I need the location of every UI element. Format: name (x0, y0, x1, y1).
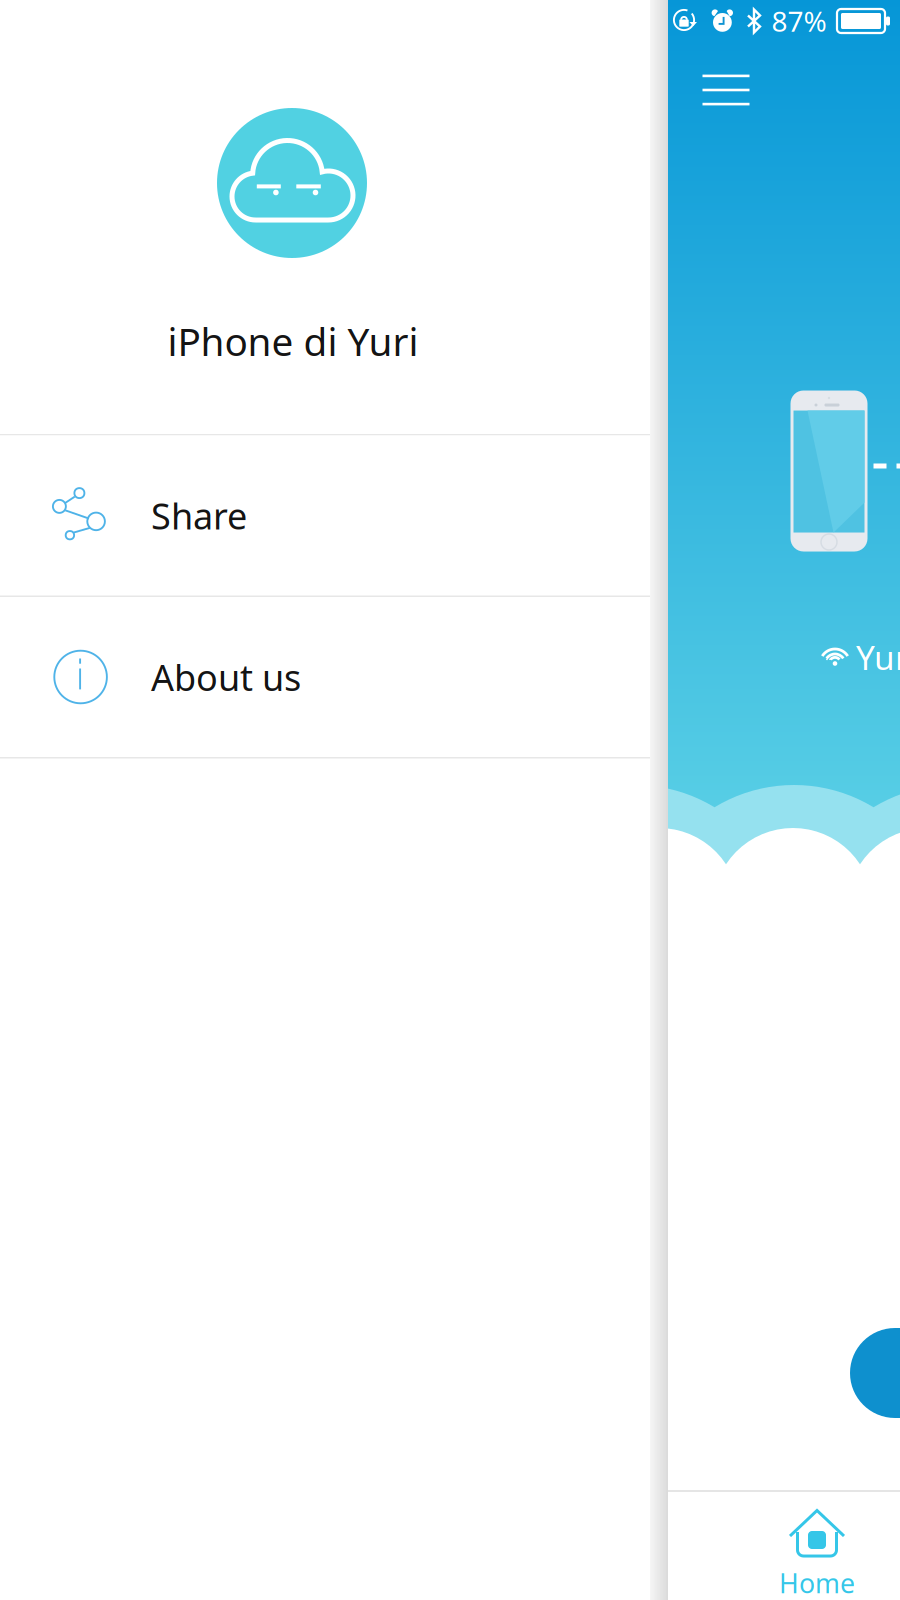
button[interactable]: About us (0, 597, 650, 757)
staticText: 87% (771, 2, 826, 40)
button[interactable]: Home (759, 1494, 875, 1600)
staticText: Yuri (856, 635, 900, 679)
button[interactable]: Share (0, 435, 650, 595)
button[interactable]: Menu (686, 57, 766, 123)
staticText: Home (779, 1565, 855, 1600)
staticText: Share (151, 492, 247, 539)
staticText: About us (151, 653, 301, 701)
button[interactable]: Add device (850, 1328, 900, 1418)
staticText: iPhone di Yuri (167, 315, 418, 367)
